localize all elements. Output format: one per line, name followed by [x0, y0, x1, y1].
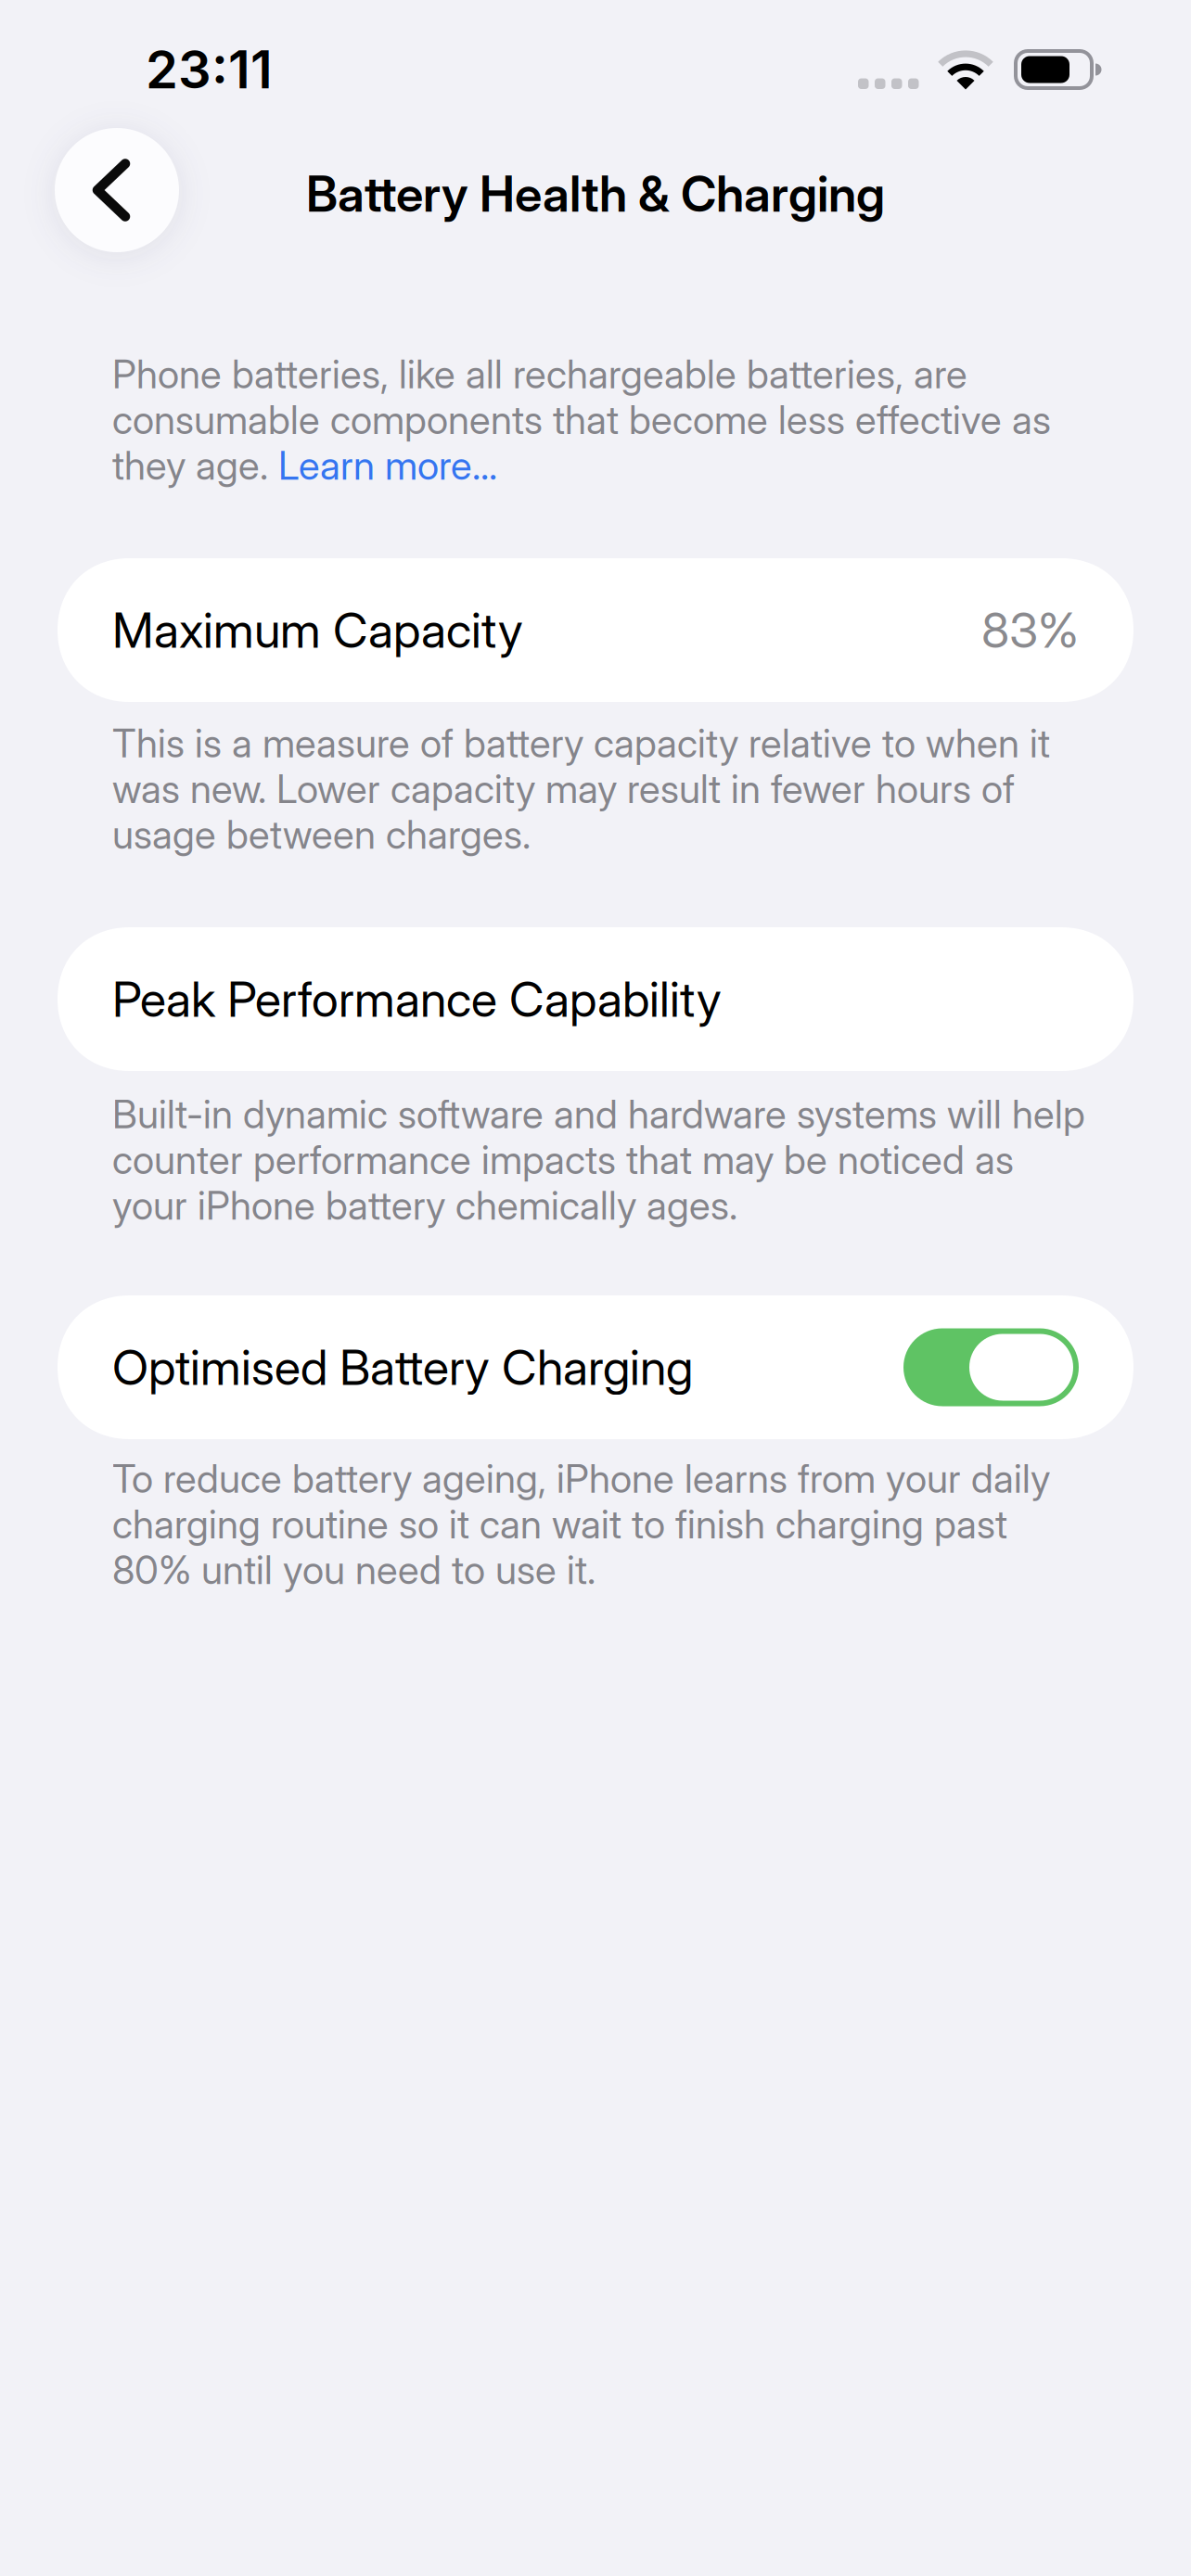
staticText: Maximum Capacity	[112, 601, 523, 659]
staticText: 23:11	[146, 38, 273, 101]
staticText: Battery Health & Charging	[306, 164, 885, 224]
staticText: Optimised Battery Charging	[112, 1338, 693, 1396]
staticText: consumable components that become less e…	[112, 396, 1051, 443]
staticText: Learn more...	[278, 442, 497, 489]
staticText: charging routine so it can wait to finis…	[112, 1501, 1007, 1548]
staticText: your iPhone battery chemically ages.	[112, 1182, 737, 1229]
staticText: 80% until you need to use it.	[112, 1546, 595, 1593]
staticText: usage between charges.	[112, 811, 531, 858]
staticText: counter performance impacts that may be …	[112, 1136, 1014, 1183]
button[interactable]: Learn more...	[278, 442, 497, 489]
button[interactable]: Maximum Capacity	[58, 558, 1133, 702]
button[interactable]: Peak Performance Capability	[58, 927, 1133, 1071]
staticText: was new. Lower capacity may result in fe…	[112, 765, 1015, 812]
staticText: Phone batteries, like all rechargeable b…	[112, 351, 967, 398]
staticText: they age.	[112, 442, 278, 489]
staticText: To reduce battery ageing, iPhone learns …	[112, 1455, 1050, 1502]
staticText: Peak Performance Capability	[112, 970, 722, 1028]
staticText: 83%	[981, 601, 1079, 659]
button[interactable]: Optimised Battery Charging	[58, 1295, 1133, 1439]
staticText: This is a measure of battery capacity re…	[112, 720, 1050, 767]
staticText: Built-in dynamic software and hardware s…	[112, 1090, 1085, 1138]
button[interactable]: Back	[55, 128, 179, 252]
button[interactable]: Optimised Battery Charging	[903, 1328, 1079, 1406]
